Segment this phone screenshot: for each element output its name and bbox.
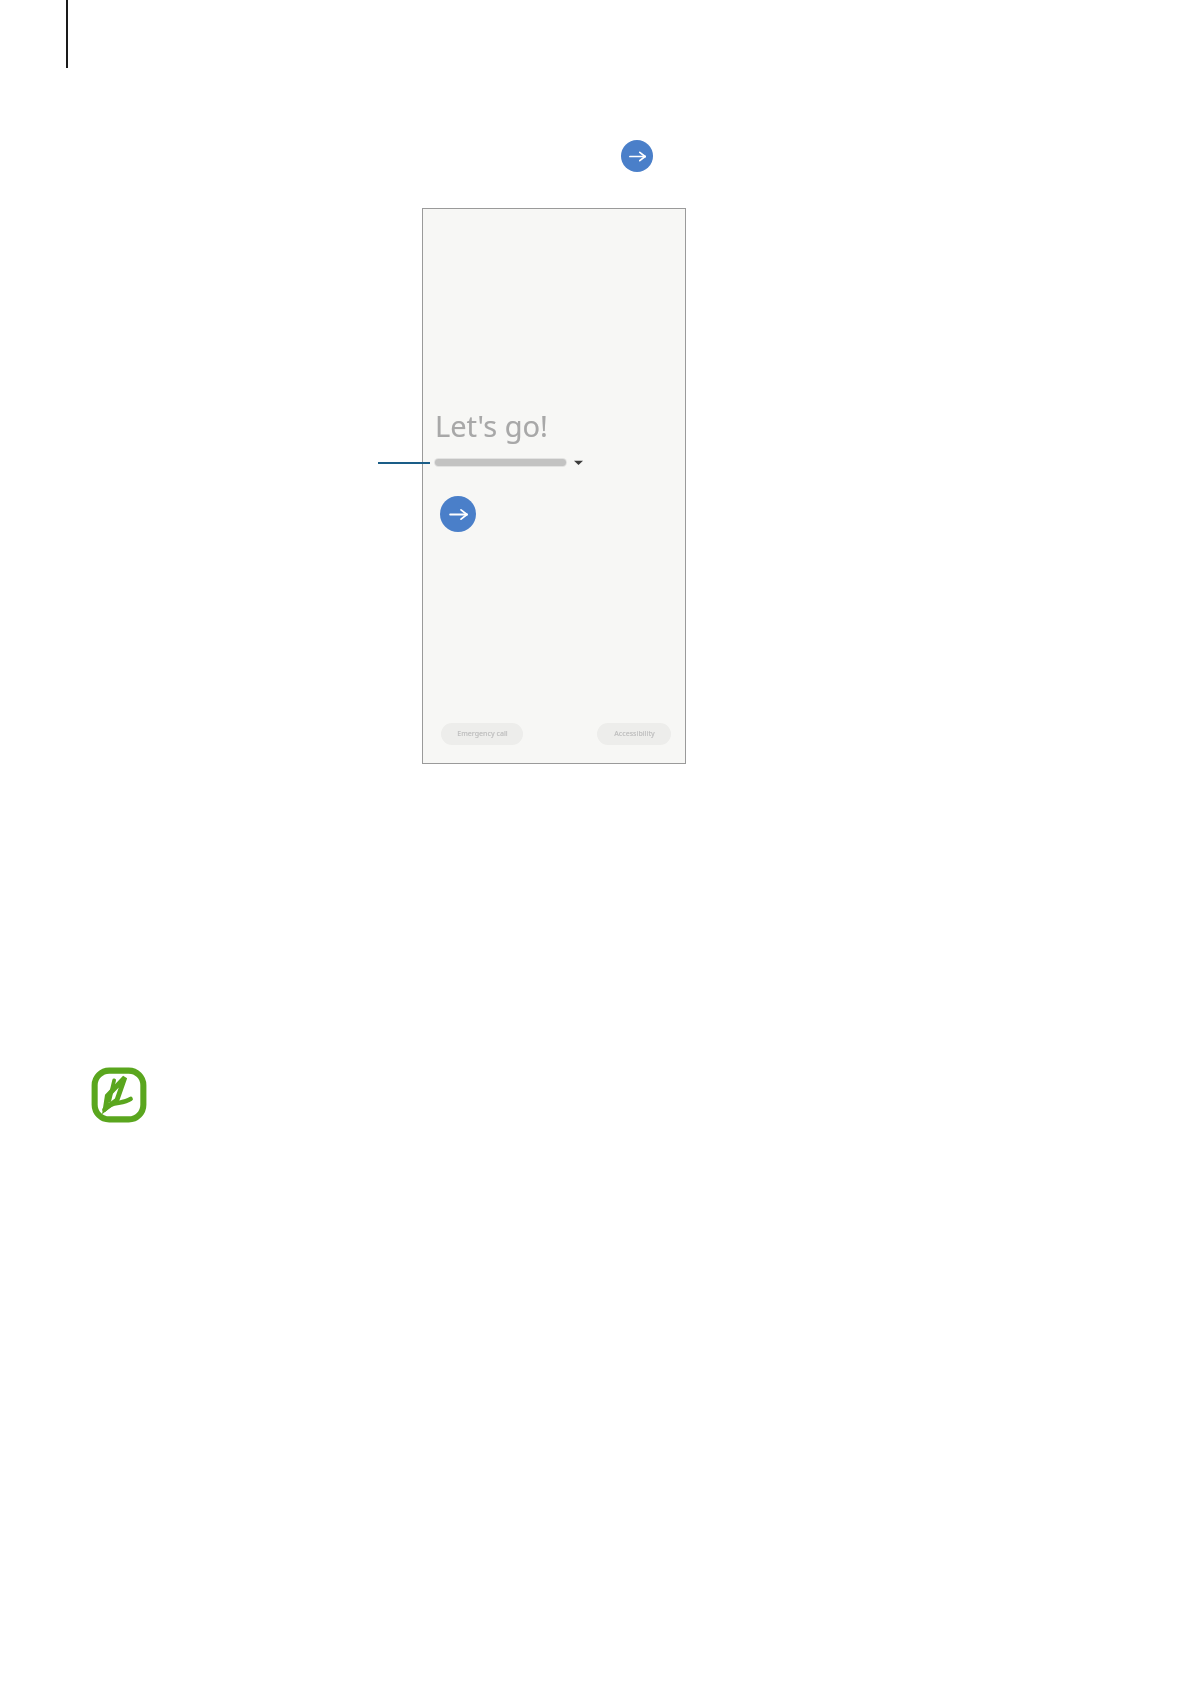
button[interactable]: Next <box>621 140 653 172</box>
staticText: Accessibility <box>614 729 655 739</box>
button[interactable] <box>435 458 583 467</box>
staticText: Emergency call <box>457 729 508 739</box>
button[interactable]: Accessibility <box>597 723 671 745</box>
button[interactable]: Emergency call <box>441 723 523 745</box>
button[interactable]: Start <box>440 496 476 532</box>
staticText: Let's go! <box>435 406 548 445</box>
